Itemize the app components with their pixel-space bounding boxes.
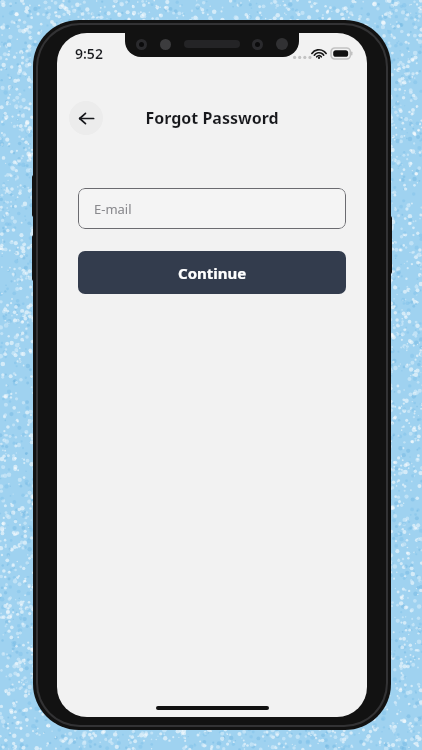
staticText: Continue: [178, 263, 247, 283]
button[interactable]: Continue: [78, 251, 346, 294]
staticText: 9:52: [75, 44, 103, 63]
button[interactable]: Back: [69, 101, 103, 135]
staticText: E-mail: [94, 200, 132, 218]
button[interactable]: E-mail: [78, 188, 346, 229]
staticText: Forgot Password: [145, 107, 279, 129]
